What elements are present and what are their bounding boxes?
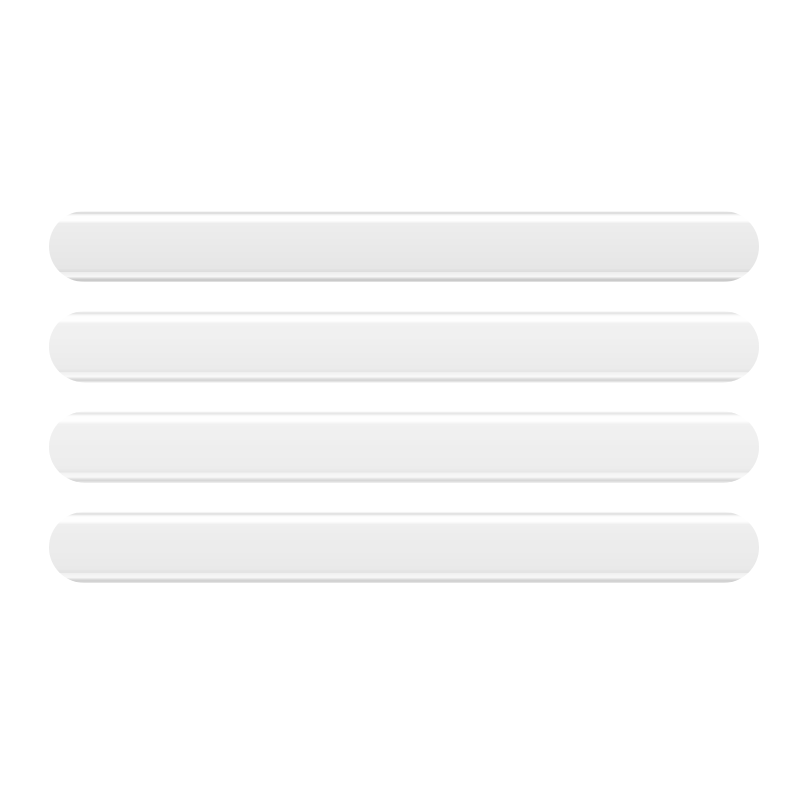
button[interactable]: Loading row [49, 311, 759, 382]
button[interactable]: Loading row [49, 412, 759, 483]
button[interactable]: Loading row [49, 512, 759, 583]
button[interactable]: Loading row [49, 211, 759, 282]
